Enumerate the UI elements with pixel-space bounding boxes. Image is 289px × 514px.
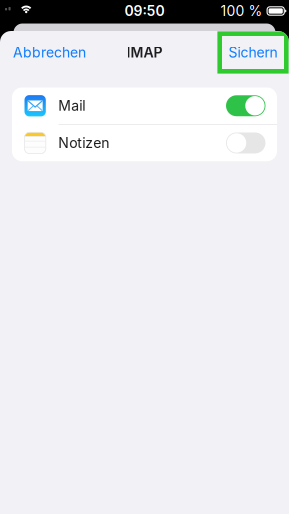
button[interactable]: Notizen	[12, 125, 277, 161]
staticText: IMAP	[126, 44, 162, 61]
staticText: Notizen	[58, 134, 109, 151]
button[interactable]: Mail	[12, 87, 277, 124]
staticText: 09:50	[124, 2, 164, 19]
button[interactable]: Abbrechen	[13, 36, 93, 69]
staticText: 100 %	[221, 2, 263, 19]
staticText: Abbrechen	[13, 44, 86, 61]
staticText: Sichern	[228, 44, 277, 61]
button[interactable]: Sichern	[217, 31, 289, 74]
staticText: Mail	[58, 97, 85, 114]
